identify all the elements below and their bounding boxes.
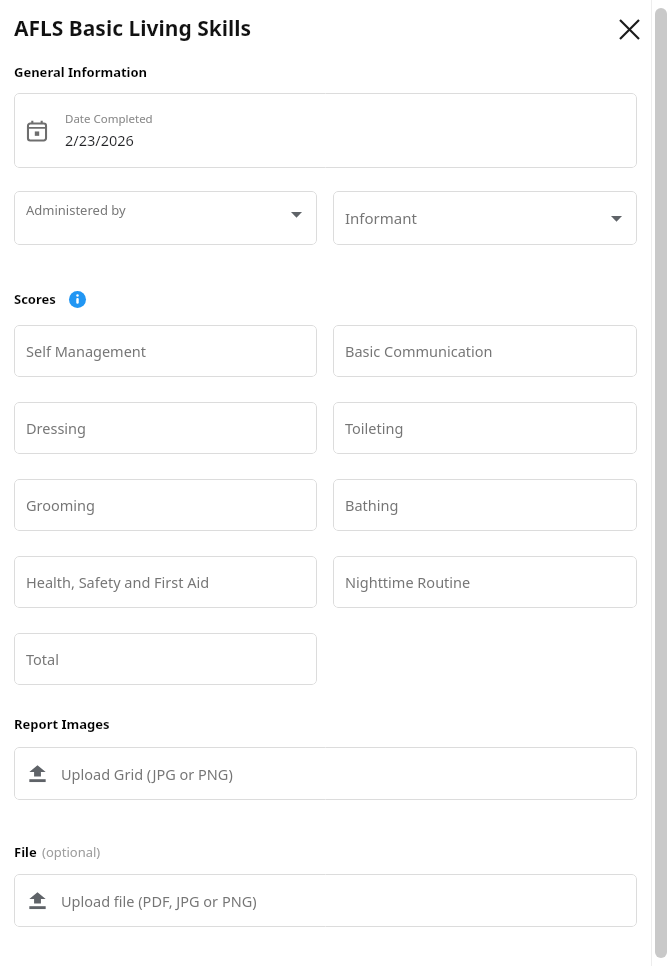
button[interactable]: Nighttime Routine [333, 556, 637, 608]
staticText: Upload file (PDF, JPG or PNG) [61, 891, 257, 911]
staticText: Upload Grid (JPG or PNG) [61, 764, 233, 784]
staticText: Self Management [26, 341, 147, 361]
staticText: General Information [14, 63, 148, 81]
button[interactable]: Administered by [14, 191, 317, 245]
staticText: AFLS Basic Living Skills [14, 14, 252, 43]
button[interactable]: Date Completed [14, 93, 637, 168]
button[interactable]: Toileting [333, 402, 637, 454]
staticText: Administered by [26, 201, 126, 219]
button[interactable]: Bathing [333, 479, 637, 531]
staticText: (optional) [42, 843, 101, 861]
button[interactable]: Basic Communication [333, 325, 637, 377]
button[interactable]: Total [14, 633, 317, 685]
button[interactable]: Health, Safety and First Aid [14, 556, 317, 608]
staticText: Bathing [345, 495, 399, 515]
staticText: Report Images [14, 715, 110, 733]
staticText: Toileting [345, 418, 404, 438]
button[interactable]: Dressing [14, 402, 317, 454]
staticText: Health, Safety and First Aid [26, 572, 210, 592]
button[interactable]: Grooming [14, 479, 317, 531]
staticText: 2/23/2026 [65, 130, 134, 150]
button[interactable]: Self Management [14, 325, 317, 377]
staticText: Dressing [26, 418, 86, 438]
button[interactable]: Upload file (PDF, JPG or PNG) [14, 874, 637, 927]
staticText: Total [26, 649, 59, 669]
staticText: Basic Communication [345, 341, 493, 361]
staticText: Date Completed [65, 111, 153, 127]
button[interactable]: Upload Grid (JPG or PNG) [14, 747, 637, 800]
button[interactable]: Close [612, 12, 646, 46]
staticText: Informant [345, 208, 417, 228]
staticText: Nighttime Routine [345, 572, 471, 592]
staticText: Scores [14, 290, 56, 308]
staticText: Grooming [26, 495, 95, 515]
staticText: File [14, 843, 37, 861]
button[interactable]: Informant [333, 191, 637, 245]
button[interactable]: Scores information [66, 288, 88, 310]
